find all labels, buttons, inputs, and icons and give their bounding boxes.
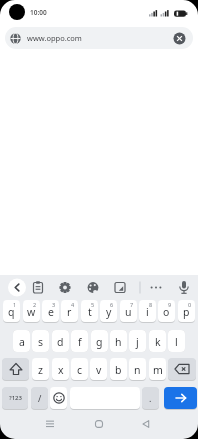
staticText: ?123 xyxy=(9,394,22,402)
button[interactable]: / xyxy=(31,387,48,409)
button[interactable] xyxy=(168,27,190,49)
staticText: 9 xyxy=(168,301,172,308)
staticText: 8 xyxy=(149,301,153,308)
button[interactable] xyxy=(2,358,29,380)
button[interactable] xyxy=(168,358,196,380)
staticText: j xyxy=(136,335,139,349)
button[interactable]: f xyxy=(71,330,88,352)
button[interactable] xyxy=(50,387,67,409)
staticText: k xyxy=(155,335,161,349)
button[interactable]: h xyxy=(110,330,127,352)
staticText: r xyxy=(67,305,72,319)
button[interactable] xyxy=(29,275,58,300)
staticText: c xyxy=(77,363,83,377)
button[interactable]: p xyxy=(178,300,195,322)
staticText: t xyxy=(88,305,92,319)
button[interactable]: b xyxy=(110,358,127,380)
staticText: u xyxy=(125,305,132,319)
staticText: x xyxy=(58,363,64,377)
staticText: s xyxy=(38,335,44,349)
staticText: e xyxy=(48,305,54,319)
staticText: 4 xyxy=(71,301,75,308)
button[interactable]: t xyxy=(81,300,98,322)
button[interactable]: o xyxy=(158,300,175,322)
button[interactable]: d xyxy=(52,330,69,352)
button[interactable]: y xyxy=(100,300,117,322)
button[interactable]: j xyxy=(129,330,146,352)
button[interactable] xyxy=(164,387,197,409)
staticText: 0 xyxy=(188,301,192,308)
staticText: 2 xyxy=(33,301,37,308)
staticText: g xyxy=(96,335,103,349)
button[interactable]: ?123 xyxy=(2,387,28,409)
staticText: a xyxy=(19,335,25,349)
button[interactable]: r xyxy=(61,300,78,322)
button[interactable]: s xyxy=(32,330,49,352)
staticText: . xyxy=(149,392,152,404)
staticText: 10:00 xyxy=(30,8,47,17)
button[interactable] xyxy=(58,275,86,300)
button[interactable]: q xyxy=(3,300,20,322)
staticText: 6 xyxy=(110,301,114,308)
button[interactable]: k xyxy=(149,330,166,352)
button[interactable]: l xyxy=(168,330,185,352)
staticText: w xyxy=(27,305,36,319)
staticText: 1 xyxy=(13,301,17,308)
staticText: q xyxy=(8,305,15,319)
staticText: i xyxy=(146,305,149,319)
staticText: 7 xyxy=(130,301,134,308)
staticText: p xyxy=(183,305,190,319)
button[interactable]: c xyxy=(71,358,88,380)
button[interactable] xyxy=(132,411,198,439)
button[interactable]: . xyxy=(142,387,159,409)
staticText: v xyxy=(96,363,102,377)
button[interactable] xyxy=(142,275,170,300)
staticText: 5 xyxy=(91,301,95,308)
staticText: m xyxy=(153,363,163,377)
staticText: www.oppo.com xyxy=(27,33,82,43)
button[interactable]: e xyxy=(42,300,59,322)
staticText: b xyxy=(115,363,122,377)
staticText: f xyxy=(78,335,82,349)
button[interactable]: n xyxy=(129,358,146,380)
button[interactable] xyxy=(86,275,114,300)
button[interactable]: g xyxy=(91,330,108,352)
button[interactable] xyxy=(0,411,66,439)
button[interactable]: a xyxy=(13,330,30,352)
staticText: o xyxy=(163,305,170,319)
button[interactable]: m xyxy=(149,358,166,380)
staticText: 3 xyxy=(52,301,56,308)
button[interactable] xyxy=(0,275,29,300)
button[interactable]: u xyxy=(120,300,137,322)
button[interactable] xyxy=(170,275,198,300)
staticText: z xyxy=(38,363,43,377)
staticText: d xyxy=(57,335,64,349)
button[interactable] xyxy=(114,275,142,300)
button[interactable]: x xyxy=(52,358,69,380)
button[interactable]: v xyxy=(90,358,107,380)
staticText: / xyxy=(38,392,42,404)
button[interactable] xyxy=(66,411,132,439)
staticText: n xyxy=(134,363,141,377)
staticText: l xyxy=(175,335,178,349)
button[interactable]: www.oppo.com xyxy=(5,27,193,49)
button[interactable]: w xyxy=(23,300,40,322)
staticText: y xyxy=(106,305,112,319)
staticText: h xyxy=(115,335,122,349)
button[interactable]: i xyxy=(139,300,156,322)
button[interactable]: z xyxy=(32,358,49,380)
